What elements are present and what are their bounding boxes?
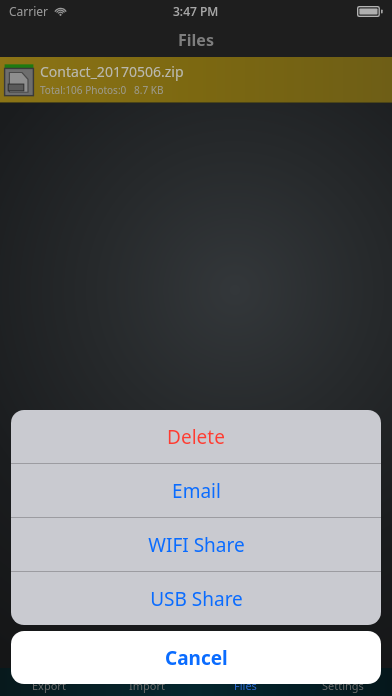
- button[interactable]: Files: [196, 668, 294, 696]
- button[interactable]: Import: [98, 668, 196, 696]
- staticText: Cancel: [165, 645, 228, 671]
- staticText: Delete: [167, 424, 225, 450]
- staticText: USB Share: [150, 586, 243, 612]
- staticText: Contact_20170506.zip: [40, 62, 184, 81]
- staticText: Import: [129, 678, 165, 693]
- staticText: Carrier: [9, 3, 49, 19]
- button[interactable]: Contact_20170506.zip: [0, 57, 392, 102]
- button[interactable]: Settings: [294, 668, 392, 696]
- button[interactable]: USB Share: [11, 572, 381, 625]
- staticText: Email: [172, 478, 221, 504]
- button[interactable]: Export: [0, 668, 98, 696]
- button[interactable]: WIFI Share: [11, 518, 381, 571]
- button[interactable]: Cancel: [11, 631, 381, 684]
- button[interactable]: Delete: [11, 410, 381, 463]
- staticText: Export: [32, 678, 66, 693]
- staticText: Files: [178, 29, 214, 51]
- button[interactable]: Email: [11, 464, 381, 517]
- staticText: Files: [234, 678, 257, 693]
- staticText: Settings: [322, 678, 364, 693]
- staticText: WIFI Share: [148, 532, 245, 558]
- staticText: 3:47 PM: [173, 3, 219, 19]
- staticText: Total:106 Photos:0 8.7 KB: [40, 83, 164, 97]
